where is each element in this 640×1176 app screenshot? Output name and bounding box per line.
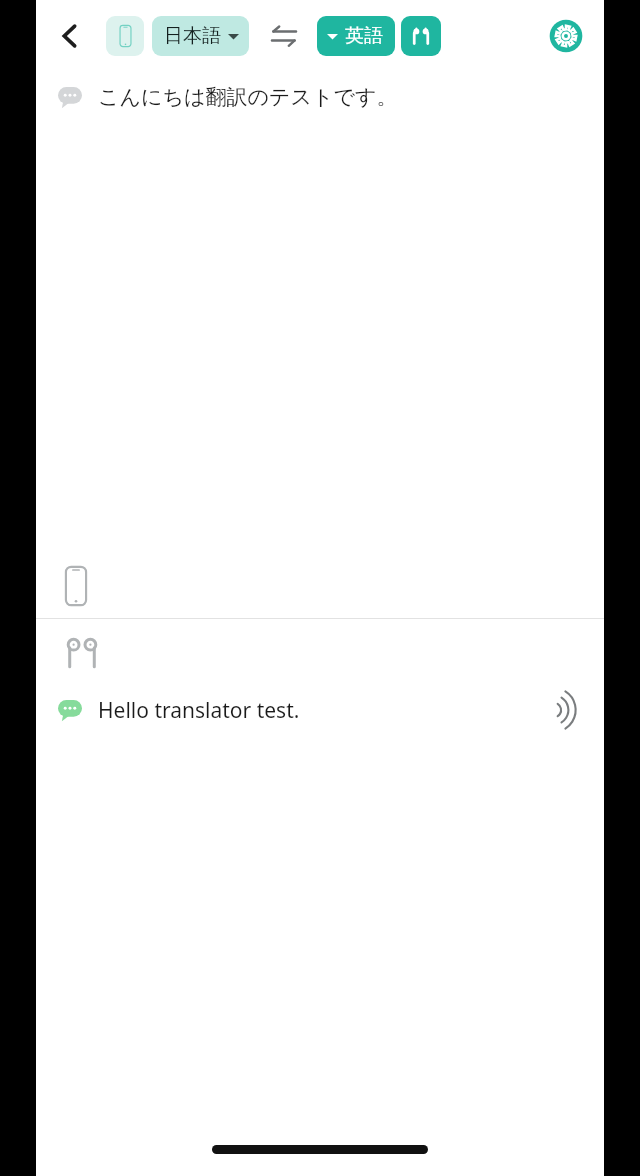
button[interactable]: Settings: [542, 12, 590, 60]
button[interactable]: Earbuds audio: [401, 16, 441, 56]
staticText: Hello translator test.: [98, 696, 544, 725]
button[interactable]: Phone speaker: [64, 564, 108, 608]
button[interactable]: 英語: [317, 16, 395, 56]
button[interactable]: Back: [46, 12, 94, 60]
button[interactable]: Swap languages: [263, 15, 305, 57]
staticText: こんにちは翻訳のテストです。: [98, 84, 398, 110]
button[interactable]: Earbuds output: [62, 629, 110, 677]
staticText: 日本語: [164, 24, 221, 48]
staticText: 英語: [345, 24, 383, 48]
button[interactable]: Play audio: [544, 689, 586, 731]
button[interactable]: Phone audio: [106, 16, 144, 56]
button[interactable]: 日本語: [152, 16, 249, 56]
